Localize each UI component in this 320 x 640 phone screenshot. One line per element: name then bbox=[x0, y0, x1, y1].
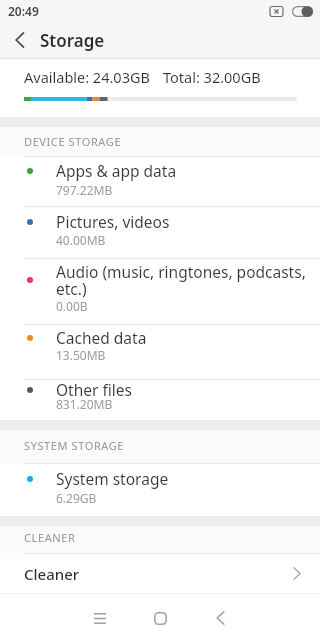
staticText: Apps & app data bbox=[56, 160, 177, 181]
staticText: SYSTEM STORAGE bbox=[24, 438, 125, 453]
button[interactable]: Audio (music, ringtones, podcasts, etc.) bbox=[0, 259, 320, 324]
button[interactable]: Pictures, videos bbox=[0, 207, 320, 258]
staticText: 20:49 bbox=[8, 3, 39, 19]
staticText: 40.00MB bbox=[56, 232, 106, 248]
staticText: Cleaner bbox=[24, 564, 80, 584]
button[interactable]: Cleaner bbox=[0, 554, 320, 593]
button[interactable] bbox=[204, 602, 236, 634]
staticText: Pictures, videos bbox=[56, 211, 170, 232]
button[interactable]: Cached data bbox=[0, 325, 320, 379]
staticText: Available: 24.03GB bbox=[24, 67, 150, 87]
staticText: Storage bbox=[40, 29, 105, 52]
staticText: 797.22MB bbox=[56, 182, 113, 198]
staticText: CLEANER bbox=[24, 530, 76, 545]
button[interactable] bbox=[0, 22, 34, 58]
staticText: Other files bbox=[56, 379, 132, 400]
staticText: System storage bbox=[56, 468, 169, 489]
button[interactable] bbox=[144, 602, 176, 634]
button[interactable]: Apps & app data bbox=[0, 157, 320, 206]
staticText: 0.00B bbox=[56, 298, 88, 314]
staticText: 6.29GB bbox=[56, 490, 97, 506]
staticText: Cached data bbox=[56, 327, 147, 348]
button[interactable] bbox=[84, 602, 116, 634]
button[interactable]: Other files bbox=[0, 380, 320, 420]
staticText: Total: 32.00GB bbox=[163, 67, 261, 87]
staticText: 831.20MB bbox=[56, 396, 113, 412]
staticText: DEVICE STORAGE bbox=[24, 134, 122, 149]
staticText: Audio (music, ringtones, podcasts, etc.) bbox=[56, 261, 306, 299]
button[interactable]: System storage bbox=[0, 464, 320, 516]
staticText: 13.50MB bbox=[56, 347, 106, 363]
